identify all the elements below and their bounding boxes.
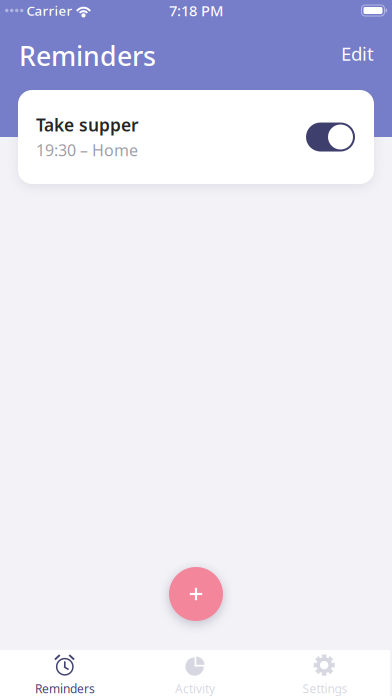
staticText: 19:30 – Home	[36, 139, 138, 161]
staticText: Reminders	[35, 680, 95, 696]
button[interactable]: Activity	[130, 650, 260, 696]
button[interactable]: Edit	[329, 38, 374, 73]
button[interactable]: Take supper enabled	[306, 122, 355, 151]
button[interactable]: Add reminder	[169, 567, 223, 621]
button[interactable]: Settings	[260, 650, 390, 696]
staticText: Settings	[302, 680, 347, 696]
staticText: Edit	[341, 41, 374, 66]
staticText: Activity	[175, 680, 215, 696]
staticText: Reminders	[19, 38, 156, 73]
staticText: Take supper	[36, 113, 139, 136]
button[interactable]: Reminders	[0, 650, 130, 696]
staticText: 7:18 PM	[169, 1, 223, 20]
button[interactable]: Take supper	[18, 90, 374, 184]
staticText: Carrier	[26, 2, 72, 19]
